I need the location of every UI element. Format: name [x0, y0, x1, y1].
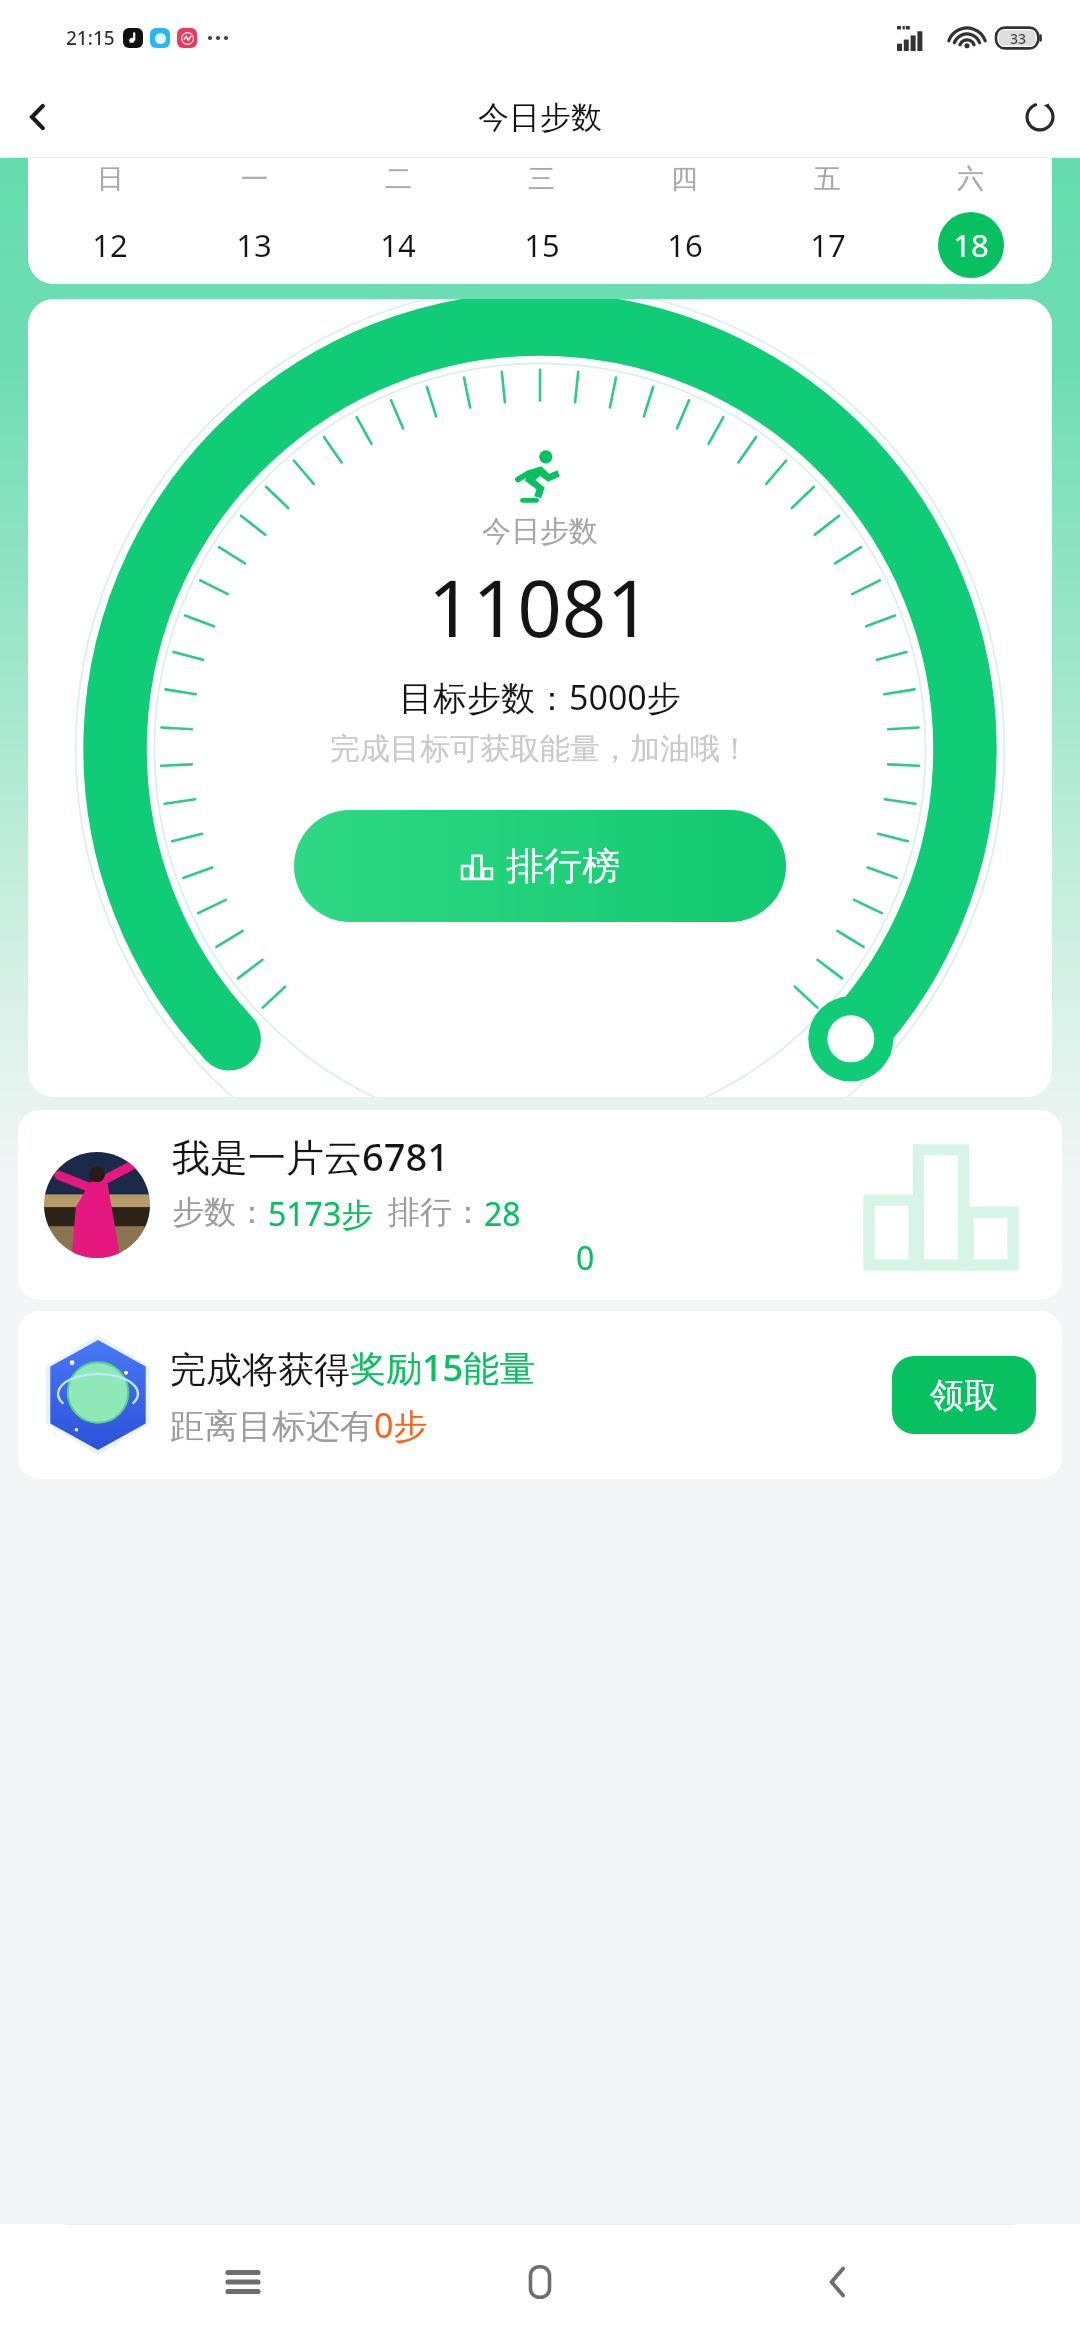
button[interactable]: 16: [652, 212, 718, 278]
staticText: 15: [524, 224, 560, 266]
button[interactable]: 返回: [783, 2227, 893, 2337]
staticText: 17: [810, 224, 846, 266]
staticText: 13: [236, 224, 272, 266]
staticText: 三: [528, 162, 555, 196]
button[interactable]: 12: [77, 212, 143, 278]
button[interactable]: 领取: [892, 1356, 1036, 1434]
button[interactable]: 我是一片云6781: [18, 1110, 1062, 1300]
button[interactable]: 刷新: [1000, 77, 1080, 157]
staticText: 我是一片云6781: [172, 1130, 449, 1182]
button[interactable]: 排行榜: [294, 810, 786, 922]
staticText: 今日步数: [478, 98, 602, 137]
staticText: 步数：: [172, 1192, 268, 1232]
staticText: 0步: [374, 1402, 428, 1448]
staticText: 奖励15能量: [350, 1343, 536, 1392]
staticText: 18: [953, 224, 989, 266]
staticText: 完成将获得: [170, 1347, 350, 1392]
staticText: 日: [97, 162, 124, 196]
button[interactable]: 15: [509, 212, 575, 278]
staticText: 一: [241, 162, 268, 196]
staticText: 12: [92, 224, 128, 266]
staticText: 0: [576, 1236, 595, 1280]
staticText: 21:15: [66, 25, 115, 51]
button[interactable]: 13: [221, 212, 287, 278]
button[interactable]: 返回: [0, 79, 76, 155]
button[interactable]: 主页: [485, 2227, 595, 2337]
staticText: 完成目标可获取能量，加油哦！: [330, 730, 750, 768]
button[interactable]: 18: [938, 212, 1004, 278]
staticText: 33: [1010, 29, 1027, 48]
staticText: 排行榜: [506, 842, 620, 890]
staticText: 16: [667, 224, 703, 266]
staticText: 今日步数: [482, 513, 598, 550]
button[interactable]: 14: [365, 212, 431, 278]
staticText: 11081: [428, 554, 652, 660]
staticText: 排行：: [388, 1192, 484, 1232]
staticText: 五: [814, 162, 841, 196]
staticText: 六: [957, 162, 984, 196]
staticText: 14: [380, 224, 416, 266]
staticText: 领取: [930, 1374, 998, 1417]
staticText: 目标步数：5000步: [399, 674, 681, 720]
staticText: 距离目标还有: [170, 1405, 374, 1448]
staticText: 5173步: [268, 1192, 374, 1236]
staticText: 四: [671, 162, 698, 196]
staticText: 二: [385, 162, 412, 196]
button[interactable]: 17: [795, 212, 861, 278]
button[interactable]: 最近任务: [188, 2227, 298, 2337]
staticText: 28: [484, 1192, 521, 1236]
